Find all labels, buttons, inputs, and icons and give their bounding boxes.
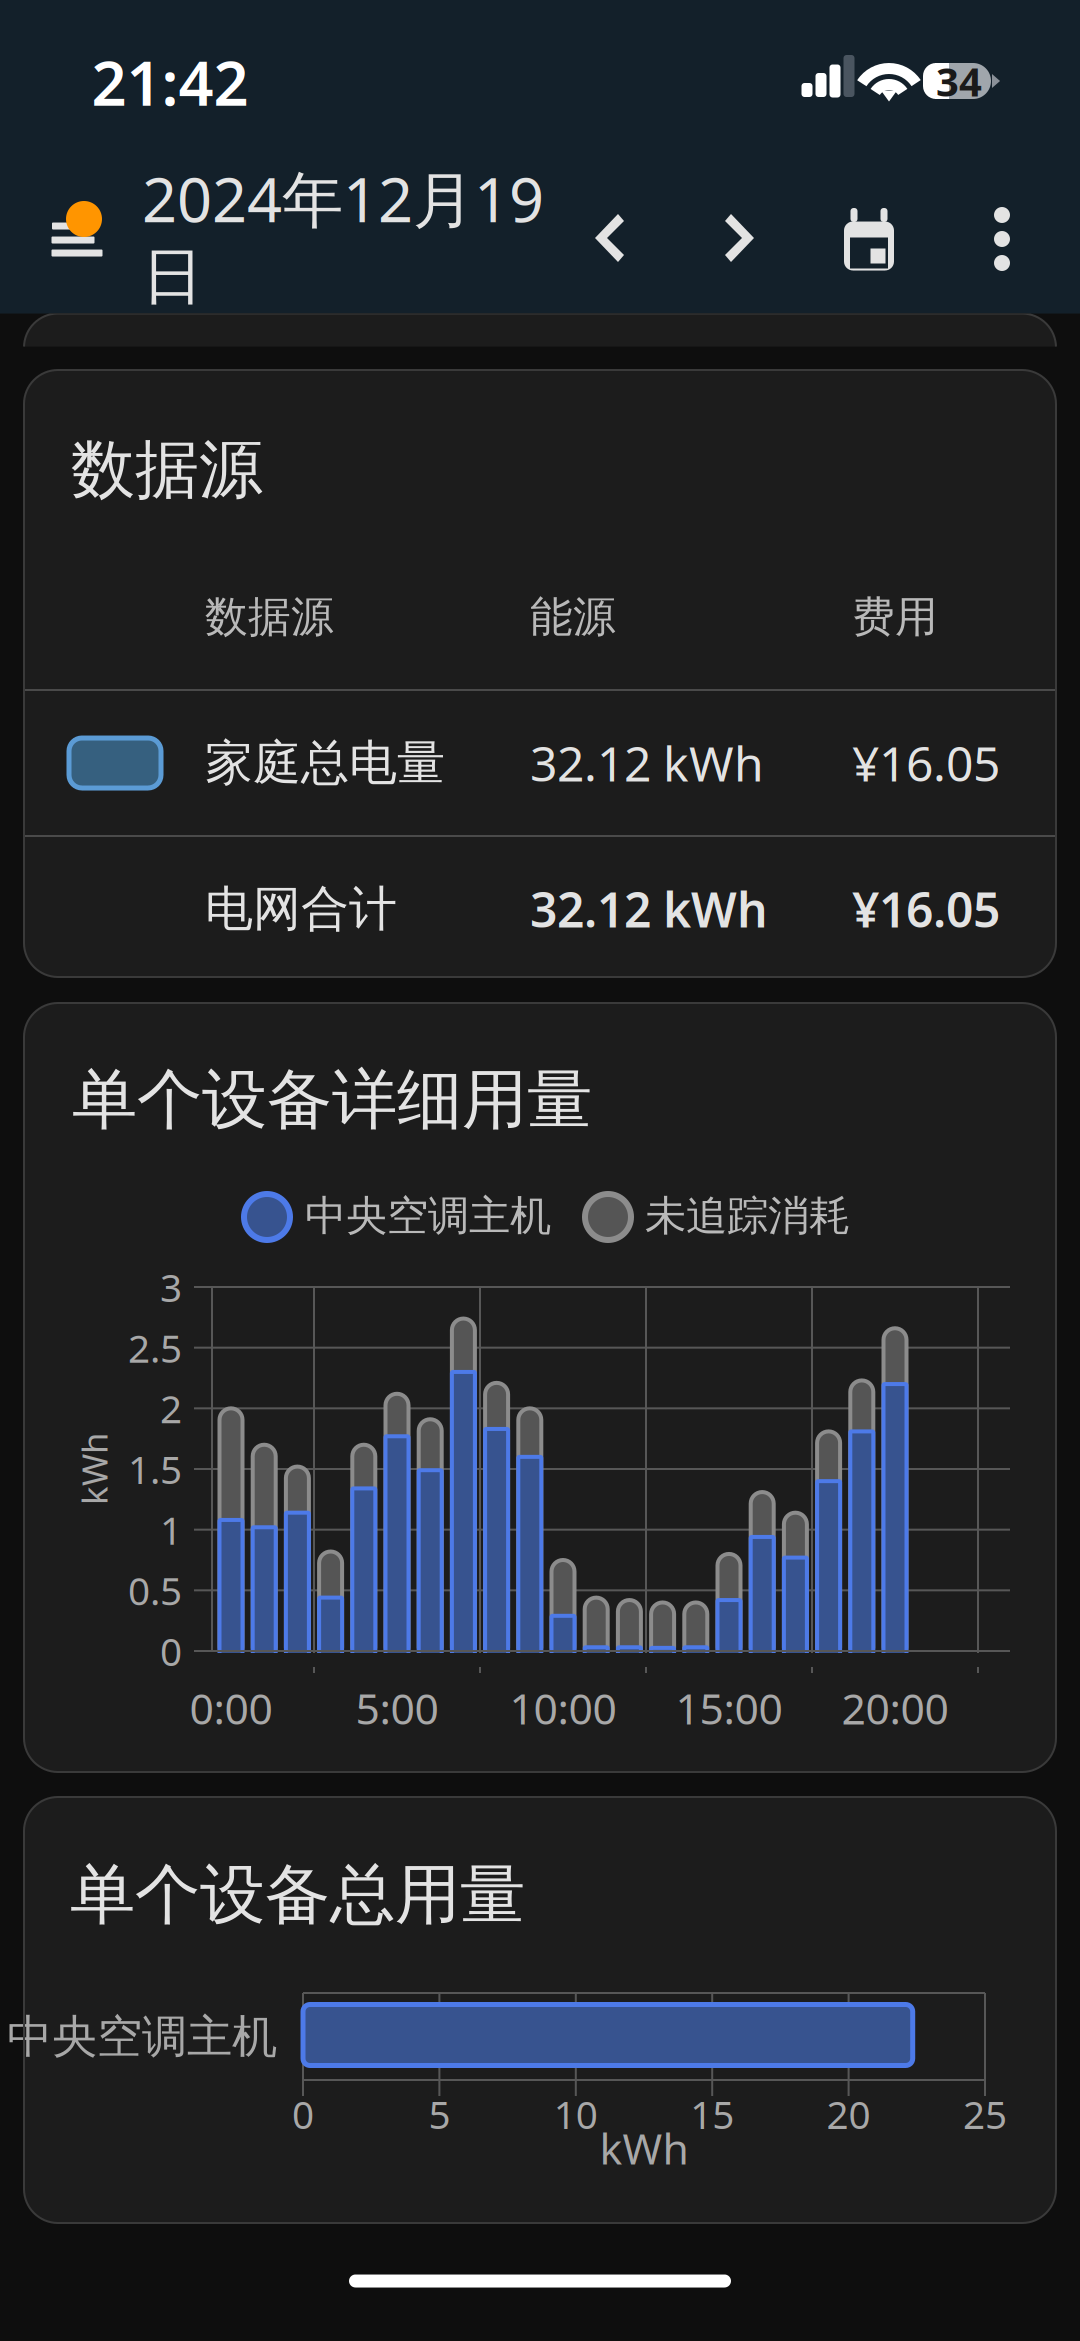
staticText: 32.12 kWh: [530, 877, 768, 941]
staticText: 5: [428, 2088, 450, 2140]
staticText: 0: [292, 2088, 314, 2140]
staticText: 20: [827, 2088, 871, 2140]
staticText: 10: [554, 2088, 598, 2140]
staticText: 2: [160, 1383, 182, 1434]
staticText: 家庭总电量: [205, 733, 445, 792]
staticText: kWh: [58, 1446, 130, 1492]
staticText: 5:00: [355, 1680, 438, 1736]
staticText: 25: [963, 2088, 1007, 2140]
staticText: 单个设备总用量: [70, 1855, 525, 1935]
staticText: 2.5: [128, 1322, 182, 1373]
staticText: 32.12 kWh: [530, 731, 764, 795]
staticText: 未追踪消耗: [645, 1191, 850, 1241]
staticText: 1: [160, 1504, 182, 1555]
staticText: 数据源: [71, 431, 263, 509]
staticText: 中央空调主机: [7, 2009, 277, 2065]
staticText: 0: [160, 1625, 182, 1677]
button[interactable]: Menu: [36, 189, 132, 289]
staticText: 20:00: [841, 1680, 948, 1736]
staticText: 10:00: [509, 1680, 616, 1736]
staticText: 3: [160, 1261, 182, 1313]
staticText: 15:00: [675, 1680, 782, 1736]
staticText: 数据源: [205, 591, 334, 643]
staticText: 34: [936, 54, 982, 107]
staticText: 费用: [852, 591, 938, 643]
staticText: 0.5: [128, 1565, 182, 1616]
staticText: 单个设备详细用量: [72, 1060, 592, 1140]
button[interactable]: Previous day: [566, 195, 654, 283]
staticText: 2024年12月19: [142, 158, 544, 239]
staticText: 15: [690, 2088, 734, 2140]
button[interactable]: Calendar: [822, 190, 916, 284]
staticText: 1.5: [128, 1443, 182, 1495]
staticText: ¥16.05: [852, 731, 1000, 795]
staticText: 21:42: [91, 41, 248, 123]
staticText: 中央空调主机: [305, 1191, 551, 1241]
staticText: kWh: [599, 2120, 688, 2176]
staticText: 日: [142, 239, 203, 314]
staticText: 0:00: [189, 1680, 272, 1736]
staticText: 能源: [530, 591, 616, 643]
staticText: ¥16.05: [852, 877, 1000, 941]
button[interactable]: More options: [958, 195, 1046, 283]
button[interactable]: Next day: [696, 195, 784, 283]
staticText: 电网合计: [205, 879, 397, 938]
